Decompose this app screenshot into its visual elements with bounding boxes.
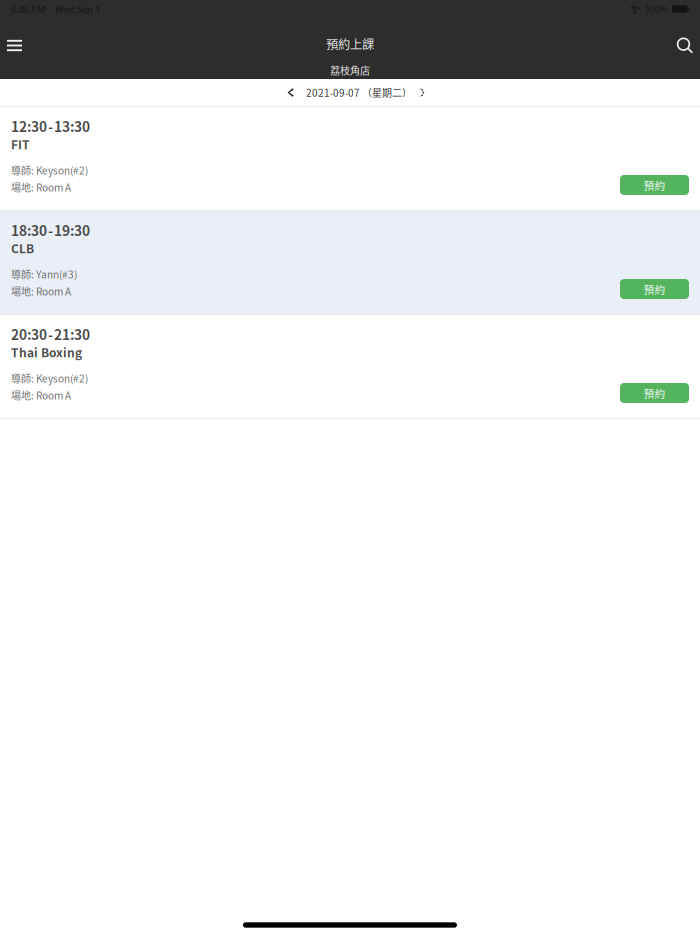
staticText: 2021-09-07 （星期二） xyxy=(306,85,412,100)
button[interactable]: Previous day xyxy=(277,79,303,106)
staticText: FIT xyxy=(11,135,30,153)
staticText: 場地: Room A xyxy=(11,180,71,194)
staticText: 6:46 PM xyxy=(11,2,46,16)
staticText: 100% xyxy=(645,2,668,16)
button[interactable]: 預約 xyxy=(620,279,689,299)
staticText: 導師: Yann(#3) xyxy=(11,267,77,281)
button[interactable]: Next day xyxy=(409,79,435,106)
staticText: CLB xyxy=(11,239,34,257)
staticText: 場地: Room A xyxy=(11,284,71,298)
staticText: 荔枝角店 xyxy=(330,63,370,77)
button[interactable]: 預約 xyxy=(620,175,689,195)
staticText: 預約 xyxy=(643,281,665,297)
staticText: 預約 xyxy=(643,385,665,401)
button[interactable]: Search xyxy=(657,21,700,69)
staticText: 導師: Keyson(#2) xyxy=(11,163,88,177)
staticText: 場地: Room A xyxy=(11,388,71,402)
button[interactable]: Menu xyxy=(0,21,43,69)
staticText: Thai Boxing xyxy=(11,343,82,361)
staticText: 18:30 - 19:30 xyxy=(11,220,90,240)
staticText: 20:30 - 21:30 xyxy=(11,324,90,344)
staticText: 預約 xyxy=(643,177,665,193)
staticText: 預約上課 xyxy=(326,35,374,53)
staticText: Wed Sep 1 xyxy=(55,2,100,16)
button[interactable]: 預約 xyxy=(620,383,689,403)
staticText: 導師: Keyson(#2) xyxy=(11,371,88,385)
staticText: 12:30 - 13:30 xyxy=(11,116,90,136)
